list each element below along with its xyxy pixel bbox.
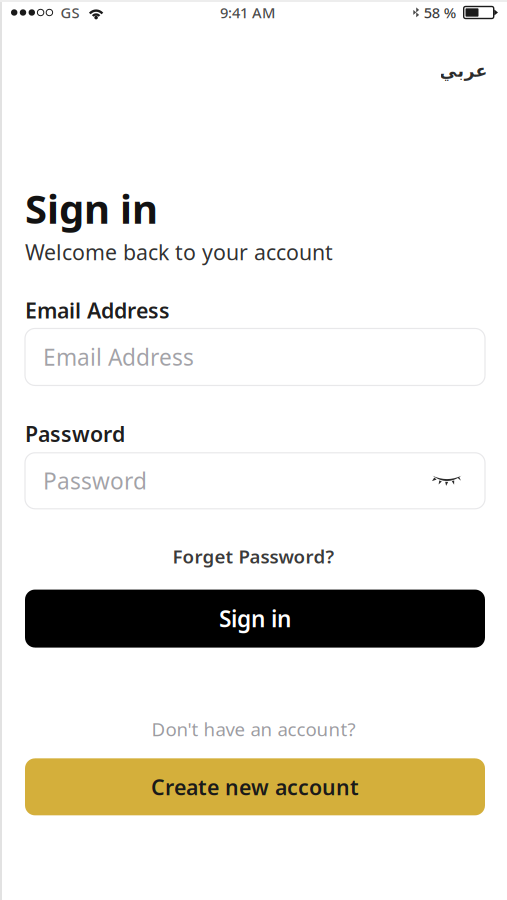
staticText: Password	[43, 466, 147, 496]
staticText: Welcome back to your account	[25, 238, 333, 266]
staticText: 9:41 AM	[220, 3, 275, 22]
staticText: Create new account	[151, 773, 359, 801]
button[interactable]: Create new account	[25, 758, 485, 815]
staticText: GS	[61, 3, 80, 22]
button[interactable]: Forget Password?	[164, 539, 342, 574]
staticText: عربي	[439, 61, 487, 81]
staticText: Email Address	[43, 342, 194, 372]
staticText: 58 %	[424, 3, 456, 22]
staticText: Email Address	[25, 296, 170, 324]
button[interactable]: Show password	[426, 464, 468, 498]
staticText: Sign in	[219, 603, 291, 634]
button[interactable]: عربي	[435, 57, 491, 85]
staticText: Sign in	[25, 182, 158, 235]
staticText: Password	[25, 419, 125, 448]
staticText: Don't have an account?	[151, 717, 355, 741]
staticText: Forget Password?	[172, 544, 334, 569]
button[interactable]: Sign in	[25, 590, 485, 648]
